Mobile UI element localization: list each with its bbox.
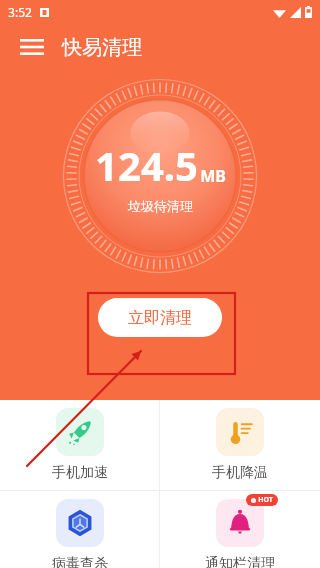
staticText: 3:52 xyxy=(8,4,32,20)
staticText: 病毒查杀 xyxy=(52,555,108,568)
button[interactable]: Menu xyxy=(12,27,52,67)
staticText: HOT xyxy=(258,495,273,505)
staticText: 手机降温 xyxy=(212,464,268,482)
staticText: 通知栏清理 xyxy=(205,555,275,568)
button[interactable]: 立即清理 xyxy=(98,298,222,337)
staticText: MB xyxy=(200,165,226,187)
staticText: 124.5 xyxy=(95,138,198,192)
button[interactable]: 手机加速 xyxy=(0,400,159,490)
staticText: 垃圾待清理 xyxy=(128,198,193,214)
staticText: 手机加速 xyxy=(52,464,108,482)
button[interactable]: HOT xyxy=(160,491,320,568)
button[interactable]: 病毒查杀 xyxy=(0,491,159,568)
staticText: 快易清理 xyxy=(62,35,142,60)
button[interactable]: 手机降温 xyxy=(160,400,320,490)
staticText: 立即清理 xyxy=(128,308,192,328)
